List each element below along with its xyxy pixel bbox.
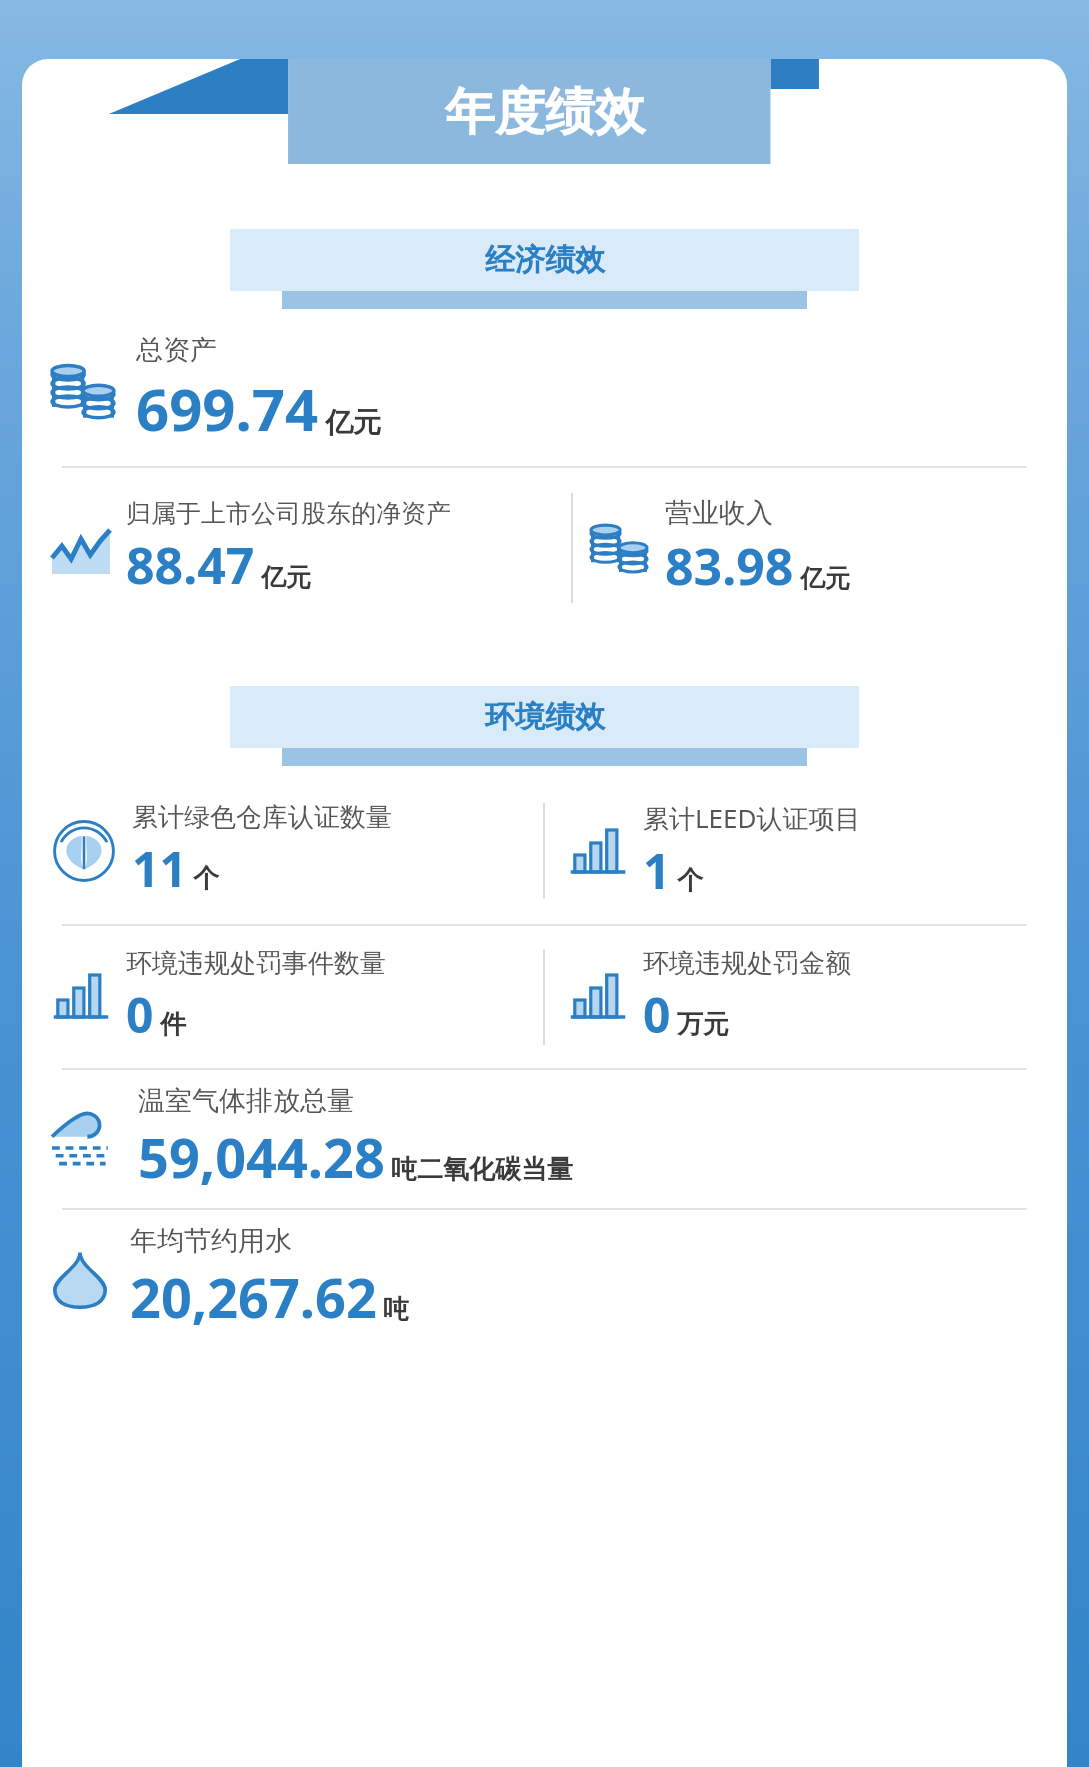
staticText: 0 <box>643 982 671 1047</box>
button[interactable]: Bar chart <box>52 947 386 1047</box>
other: Coins <box>591 522 647 574</box>
staticText: 营业收入 <box>665 496 773 530</box>
button[interactable]: 经济绩效 <box>230 229 859 291</box>
staticText: 亿元 <box>800 563 850 594</box>
other: Greenhouse gas emissions <box>52 1111 120 1167</box>
button[interactable]: Greenhouse gas emissions <box>52 1084 1069 1194</box>
button[interactable]: Coins <box>591 496 850 600</box>
button[interactable]: 环境绩效 <box>230 686 859 748</box>
staticText: 归属于上市公司股东的净资产 <box>126 498 451 529</box>
other: Green leaf <box>52 819 116 883</box>
staticText: 累计LEED认证项目 <box>643 800 861 836</box>
staticText: 万元 <box>677 1008 729 1041</box>
staticText: 59,044.28 <box>138 1120 385 1194</box>
staticText: 吨二氧化碳当量 <box>391 1153 573 1186</box>
staticText: 1 <box>643 838 671 903</box>
staticText: 个 <box>193 862 219 895</box>
other: Water drop <box>52 1249 108 1309</box>
staticText: 83.98 <box>665 532 794 600</box>
staticText: 吨 <box>383 1293 409 1326</box>
staticText: 年度绩效 <box>445 81 645 144</box>
staticText: 件 <box>160 1008 186 1041</box>
staticText: 11 <box>132 836 187 901</box>
staticText: 温室气体排放总量 <box>138 1084 354 1118</box>
staticText: 20,267.62 <box>130 1260 377 1334</box>
button[interactable]: Trend chart <box>52 498 451 599</box>
staticText: 环境违规处罚金额 <box>643 947 851 980</box>
button[interactable]: Coins <box>52 333 1069 448</box>
staticText: 699.74 <box>136 369 319 448</box>
staticText: 88.47 <box>126 531 255 599</box>
button[interactable]: Bar chart <box>569 800 861 903</box>
staticText: 亿元 <box>261 562 311 593</box>
staticText: 环境绩效 <box>485 698 605 736</box>
button[interactable]: Green leaf <box>52 801 392 901</box>
other: Trend chart <box>52 524 110 574</box>
other: Bar chart <box>569 972 627 1022</box>
staticText: 个 <box>677 864 703 897</box>
button[interactable]: Water drop <box>52 1224 1069 1334</box>
staticText: 累计绿色仓库认证数量 <box>132 801 392 834</box>
staticText: 经济绩效 <box>485 241 605 279</box>
staticText: 总资产 <box>136 333 217 367</box>
staticText: 年均节约用水 <box>130 1224 292 1258</box>
staticText: 0 <box>126 982 154 1047</box>
other: Bar chart <box>52 972 110 1022</box>
staticText: 环境违规处罚事件数量 <box>126 947 386 980</box>
other: Coins <box>52 362 114 420</box>
staticText: 亿元 <box>325 405 381 440</box>
other: Bar chart <box>569 827 627 877</box>
button[interactable]: Bar chart <box>569 947 851 1047</box>
